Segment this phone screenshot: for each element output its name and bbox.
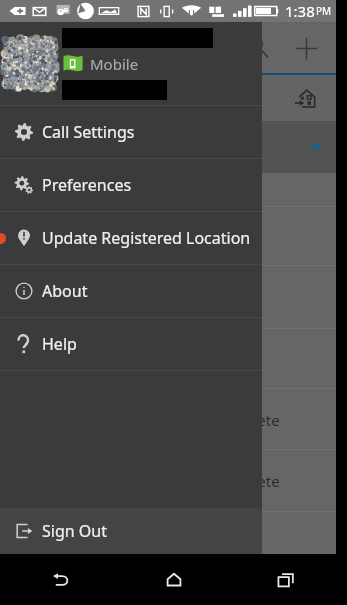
staticText: Sign Out (42, 520, 107, 542)
button[interactable]: Home (143, 554, 205, 605)
staticText: 1:38 (285, 1, 315, 21)
button[interactable]: Recents (255, 554, 317, 605)
button[interactable] (0, 121, 336, 173)
button[interactable]: Call Settings (0, 106, 262, 158)
staticText: About (42, 280, 88, 302)
button[interactable]: About (0, 265, 262, 317)
staticText: Mobile (90, 54, 139, 74)
staticText: Call Settings (42, 121, 135, 143)
staticText: Update Registered Location (42, 227, 251, 249)
button[interactable]: Sign Out (0, 508, 262, 554)
button[interactable]: Update Registered Location (0, 212, 262, 264)
button[interactable] (0, 173, 336, 207)
button[interactable]: Search (236, 23, 280, 73)
staticText: Delete (234, 410, 280, 430)
staticText: Preferences (42, 174, 132, 196)
staticText: PM (316, 4, 332, 18)
button[interactable] (0, 266, 336, 329)
button[interactable]: Delete (0, 450, 336, 512)
button[interactable] (0, 329, 336, 389)
button[interactable]: Back (30, 554, 92, 605)
button[interactable]: Preferences (0, 159, 262, 211)
button[interactable] (0, 207, 336, 266)
button[interactable]: Devices tab (283, 75, 327, 121)
button[interactable]: Help (0, 318, 262, 370)
staticText: Help (42, 333, 77, 355)
staticText: Delete (234, 471, 280, 491)
button[interactable]: Delete (0, 389, 336, 450)
button[interactable]: Add (284, 23, 328, 73)
